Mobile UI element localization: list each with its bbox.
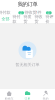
staticText: 待发货	[23, 14, 31, 24]
staticText: 暂无相关订单	[15, 62, 39, 67]
button[interactable]: 全部	[0, 16, 11, 21]
staticText: 待付款	[12, 14, 20, 24]
button[interactable]: 待付款	[11, 16, 22, 21]
staticText: 1件	[36, 10, 42, 15]
button[interactable]: 我的	[37, 89, 55, 100]
button[interactable]: 待评价	[44, 16, 55, 21]
staticText: 待评价	[45, 14, 53, 24]
staticText: 待付款	[0, 10, 11, 15]
button[interactable]: 购物车	[0, 89, 18, 100]
staticText: 待收货	[34, 14, 42, 24]
staticText: 我的	[43, 97, 49, 100]
staticText: 订单	[24, 97, 30, 100]
button[interactable]: 待收货	[33, 16, 44, 21]
staticText: 付款	[20, 9, 23, 16]
staticText: 购物车	[5, 97, 14, 100]
button[interactable]: 签收	[46, 11, 52, 14]
staticText: 待收货	[25, 10, 37, 15]
button[interactable]: 订单	[18, 89, 37, 100]
staticText: 全部	[1, 16, 9, 21]
button[interactable]: 待发货	[22, 16, 33, 21]
staticText: 签收	[47, 9, 50, 16]
button[interactable]: 付款	[18, 11, 24, 14]
staticText: 我的订单	[17, 1, 37, 7]
